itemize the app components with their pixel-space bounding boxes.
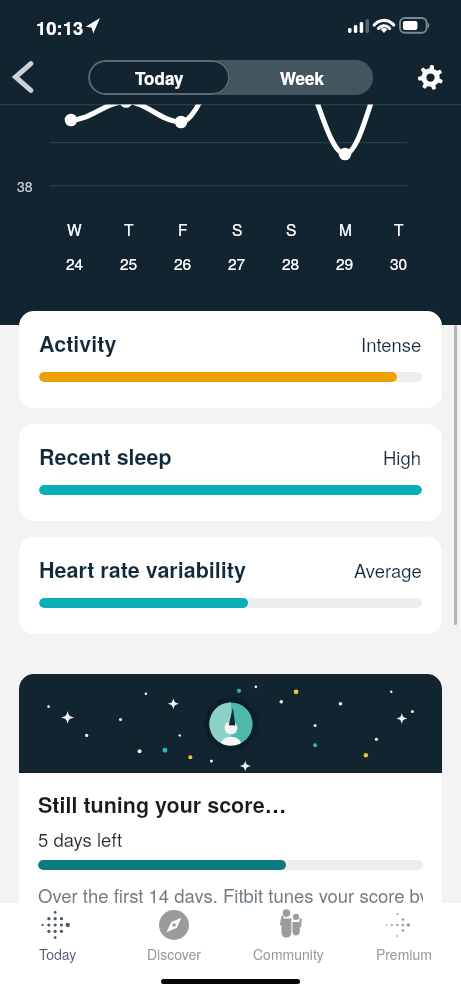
- staticText: S: [286, 218, 297, 240]
- staticText: Today: [135, 66, 184, 90]
- button[interactable]: Week: [230, 60, 373, 95]
- staticText: 38: [17, 176, 33, 196]
- staticText: Average: [354, 557, 422, 583]
- staticText: T: [124, 218, 134, 240]
- staticText: F: [178, 218, 188, 240]
- button[interactable]: Discover: [116, 903, 231, 965]
- staticText: Heart rate variability: [39, 554, 354, 585]
- staticText: Community: [253, 944, 324, 964]
- button[interactable]: Today: [88, 60, 230, 95]
- button[interactable]: Heart rate variability: [19, 537, 442, 634]
- staticText: S: [232, 218, 243, 240]
- staticText: Intense: [361, 331, 422, 357]
- staticText: 28: [282, 252, 300, 274]
- staticText: Discover: [147, 944, 201, 964]
- staticText: T: [394, 218, 404, 240]
- staticText: Week: [280, 66, 324, 90]
- button[interactable]: Community: [231, 903, 346, 965]
- staticText: Premium: [376, 944, 432, 964]
- button[interactable]: Settings: [409, 56, 451, 98]
- staticText: Activity: [39, 328, 361, 359]
- staticText: 26: [174, 252, 192, 274]
- button[interactable]: Today: [0, 903, 116, 965]
- staticText: 24: [66, 252, 84, 274]
- staticText: 27: [228, 252, 246, 274]
- staticText: Today: [39, 944, 77, 964]
- staticText: 29: [336, 252, 354, 274]
- button[interactable]: Still tuning your score…: [19, 674, 442, 948]
- staticText: 5 days left: [38, 826, 123, 852]
- staticText: High: [383, 444, 422, 470]
- button[interactable]: Premium: [346, 903, 461, 965]
- staticText: Over the first 14 days, Fitbit tunes you…: [38, 882, 423, 908]
- staticText: Recent sleep: [39, 441, 383, 472]
- staticText: 30: [390, 252, 408, 274]
- button[interactable]: Recent sleep: [19, 424, 442, 521]
- staticText: M: [339, 218, 352, 240]
- staticText: Still tuning your score…: [38, 789, 287, 820]
- staticText: 10:13: [36, 14, 84, 40]
- staticText: 25: [120, 252, 138, 274]
- button[interactable]: Back: [2, 56, 44, 98]
- button[interactable]: Activity: [19, 311, 442, 408]
- staticText: W: [67, 218, 82, 240]
